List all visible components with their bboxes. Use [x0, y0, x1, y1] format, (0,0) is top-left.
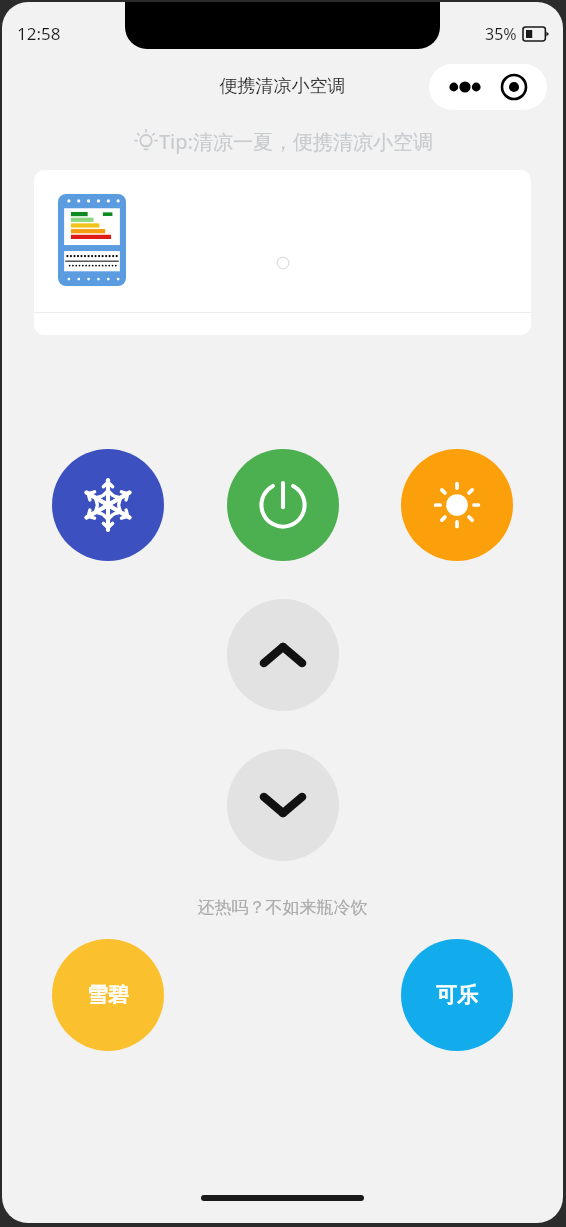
staticText: 可乐 — [436, 982, 478, 1008]
button[interactable]: Decrease — [227, 749, 339, 861]
button[interactable]: 雪碧 — [52, 939, 164, 1051]
staticText: 便携清凉小空调 — [2, 75, 563, 98]
staticText: Tip:清凉一夏，便携清凉小空调 — [159, 128, 433, 155]
staticText: 还热吗？不如来瓶冷饮 — [2, 897, 563, 918]
button[interactable]: Power — [227, 449, 339, 561]
button[interactable]: Cool mode — [52, 449, 164, 561]
staticText: 雪碧 — [87, 982, 129, 1008]
button[interactable] — [34, 170, 531, 335]
button[interactable]: Heat mode — [401, 449, 513, 561]
button[interactable]: More and close — [429, 64, 547, 110]
button[interactable]: Increase — [227, 599, 339, 711]
button[interactable]: 可乐 — [401, 939, 513, 1051]
staticText: 12:58 — [17, 22, 61, 45]
staticText: 35% — [485, 23, 517, 45]
